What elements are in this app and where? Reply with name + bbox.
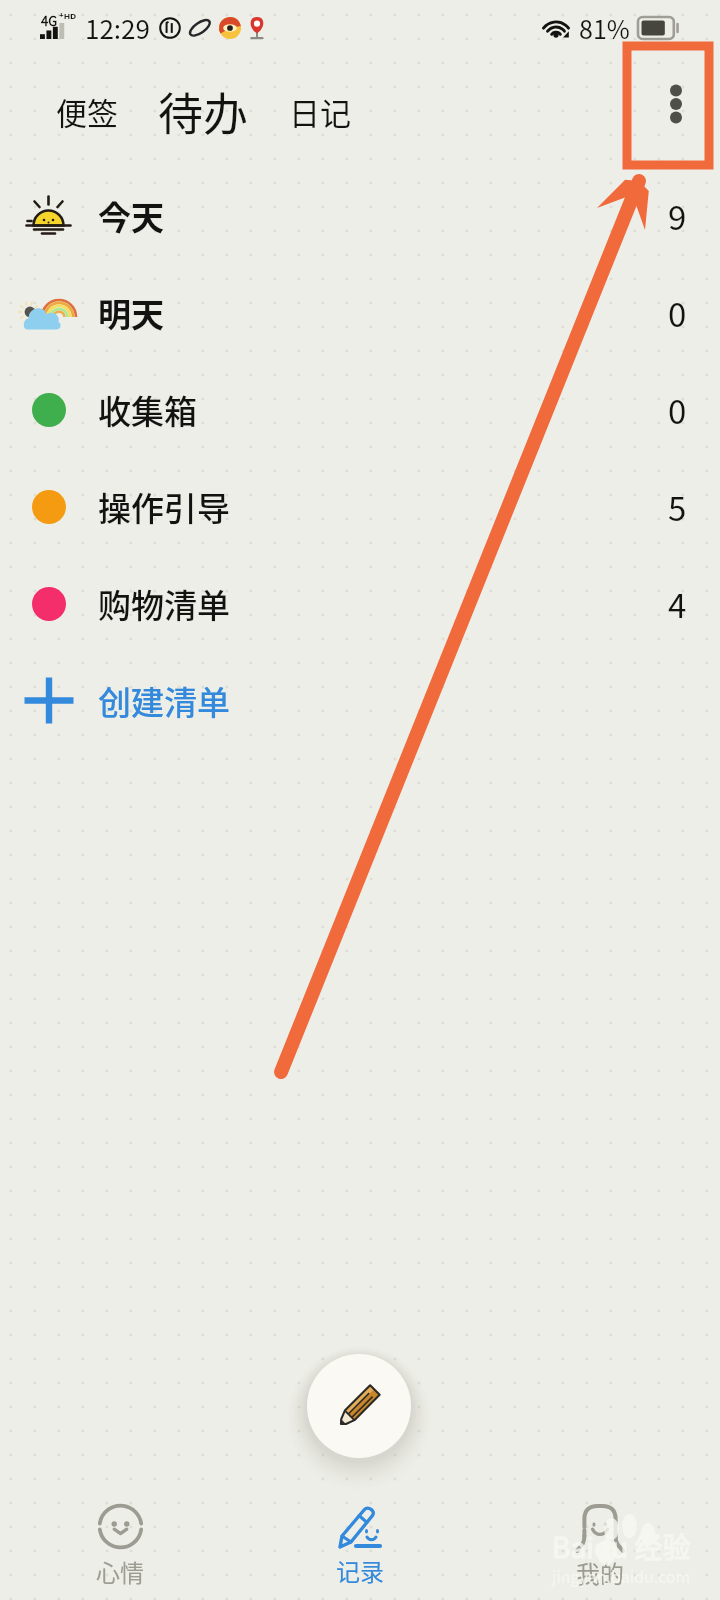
staticText: 操作引导: [98, 483, 230, 531]
staticText: 记录: [336, 1553, 384, 1588]
staticText: 0: [668, 386, 687, 434]
staticText: 5: [668, 483, 687, 531]
staticText: 今天: [98, 192, 164, 240]
staticText: 4: [668, 580, 687, 628]
button[interactable]: More options: [636, 68, 716, 140]
button[interactable]: 日记: [283, 81, 357, 148]
staticText: ⁺ᴴᴰ: [59, 9, 77, 27]
button[interactable]: 收集箱: [0, 361, 720, 458]
staticText: 81%: [579, 10, 630, 46]
staticText: 4G: [41, 11, 58, 30]
button[interactable]: 购物清单: [0, 555, 720, 652]
staticText: 待办: [158, 79, 249, 144]
staticText: 日记: [289, 89, 351, 134]
button[interactable]: New note: [307, 1354, 411, 1458]
button[interactable]: 便签: [50, 81, 124, 148]
staticText: 明天: [98, 289, 164, 337]
staticText: 心情: [96, 1554, 144, 1589]
button[interactable]: 明天: [0, 264, 720, 361]
staticText: 12:29: [85, 9, 150, 47]
button[interactable]: 心情: [0, 1492, 240, 1600]
button[interactable]: 我的: [480, 1492, 720, 1600]
button[interactable]: 操作引导: [0, 458, 720, 555]
button[interactable]: 记录: [240, 1492, 480, 1600]
staticText: 便签: [56, 89, 118, 134]
button[interactable]: 创建清单: [0, 652, 720, 749]
staticText: 9: [668, 192, 687, 240]
staticText: 我的: [576, 1555, 624, 1590]
button[interactable]: 待办: [152, 75, 255, 148]
staticText: 购物清单: [98, 580, 230, 628]
staticText: 收集箱: [98, 386, 197, 434]
button[interactable]: 今天: [0, 167, 720, 264]
staticText: jingyan.baidu.com: [552, 1564, 691, 1587]
staticText: 0: [668, 289, 687, 337]
staticText: 创建清单: [98, 677, 230, 725]
staticText: Baidu 经验: [552, 1526, 691, 1567]
